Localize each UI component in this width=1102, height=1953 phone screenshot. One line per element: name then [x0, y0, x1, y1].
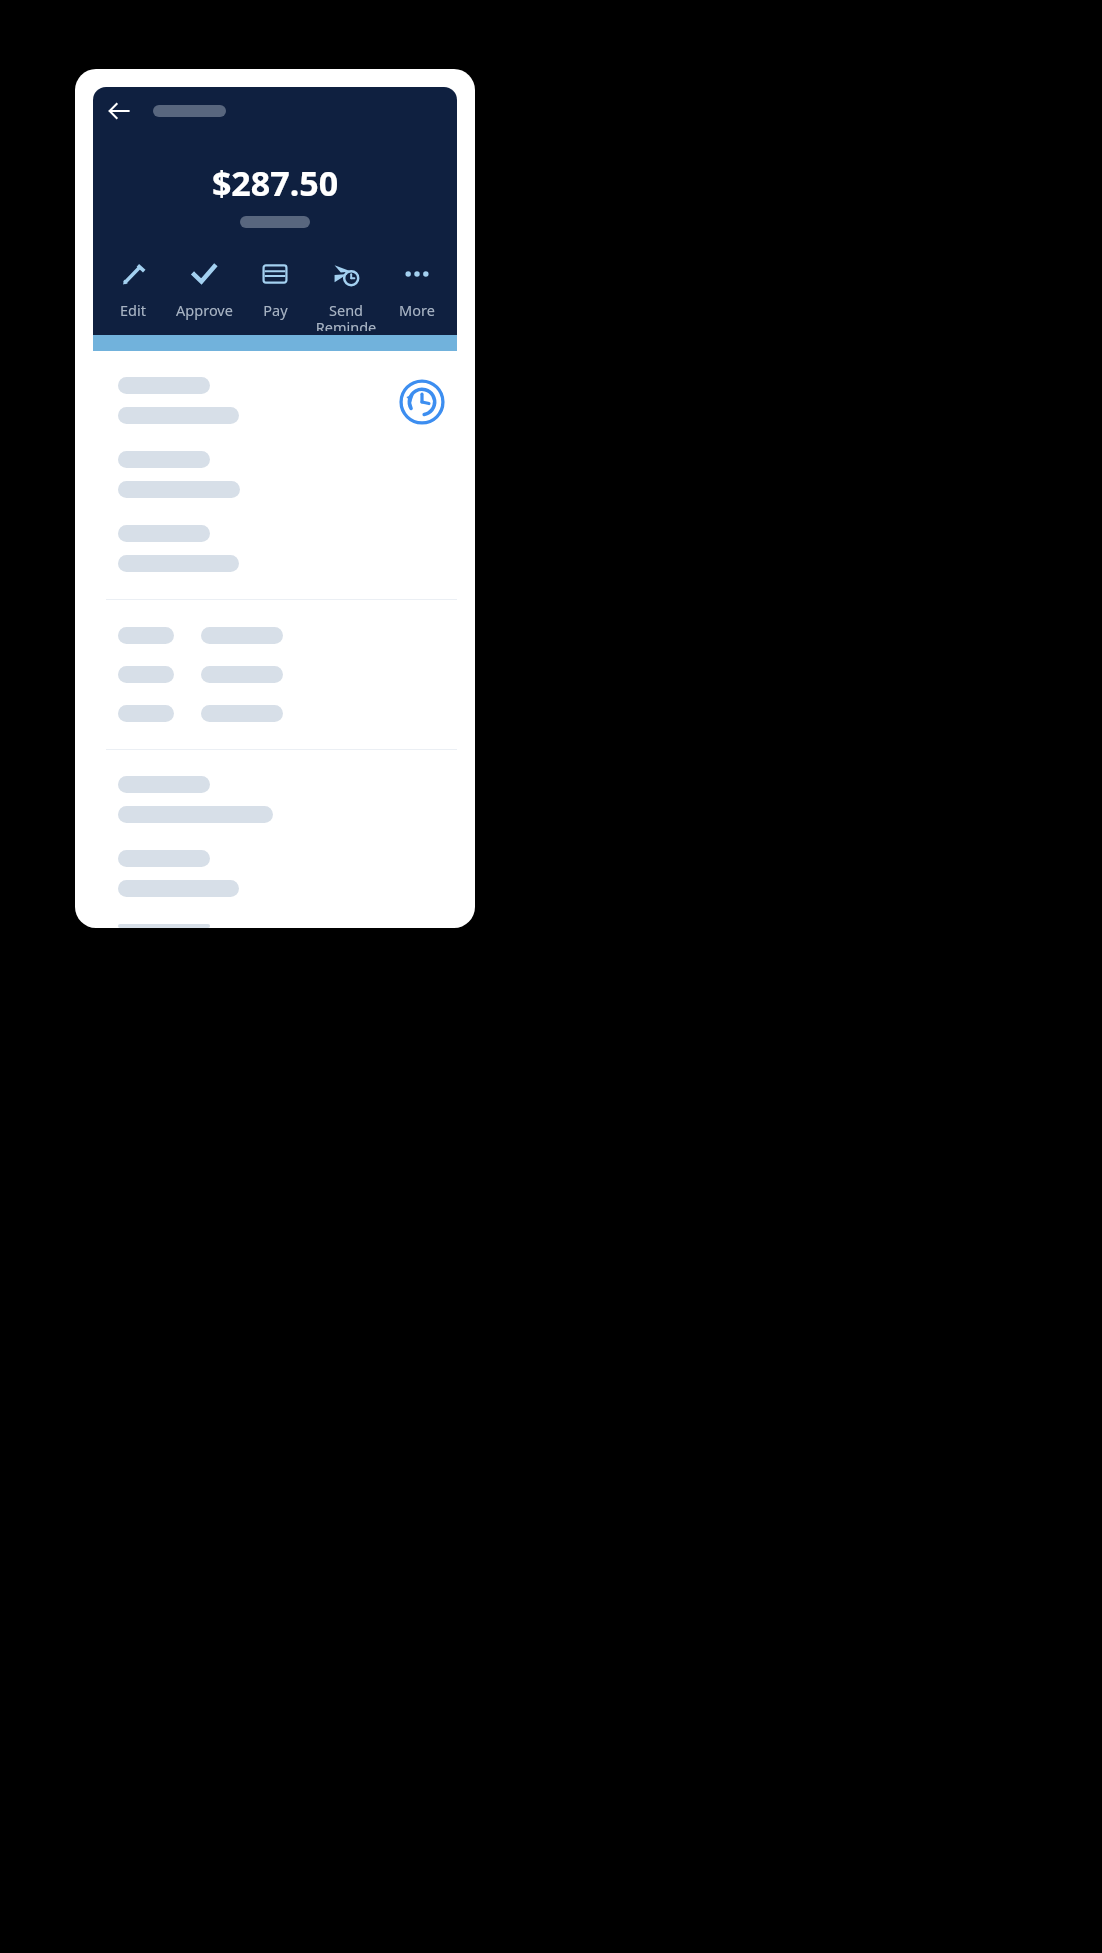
staticText: $287.50 — [93, 160, 457, 206]
other: Send Reminder — [333, 261, 359, 287]
button[interactable]: History — [399, 379, 445, 425]
button[interactable]: Approve — [172, 257, 236, 324]
staticText: Pay — [263, 300, 288, 320]
staticText: Send Reminder — [314, 300, 378, 331]
staticText: Edit — [120, 300, 146, 320]
other: Approve — [191, 261, 217, 287]
button[interactable]: Pay — [243, 257, 307, 324]
button[interactable]: Back — [107, 99, 131, 123]
button[interactable]: Edit — [101, 257, 165, 324]
other: More — [404, 261, 430, 287]
other: Pay — [262, 261, 288, 287]
staticText: More — [399, 300, 435, 320]
button[interactable]: Send Reminder — [314, 257, 378, 335]
button[interactable]: More — [385, 257, 449, 324]
staticText: Approve — [176, 300, 233, 320]
other: Edit — [120, 261, 146, 287]
